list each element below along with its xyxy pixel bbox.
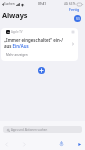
button[interactable]: Apps und Aktionen suchen [3,126,82,133]
button[interactable]: Apple TV [1,28,78,61]
button[interactable]: Senden [76,141,82,147]
button[interactable]: Schließen [71,30,75,34]
staticText: Apps und Aktionen suchen [11,128,48,132]
staticText: Suchen [4,2,15,6]
staticText: Apple TV [11,30,23,34]
button[interactable]: Profil [74,15,81,22]
button[interactable]: Vorwärts [21,141,27,147]
staticText: „Immer eingeschaltet“ ein-/ aus Ein/Aus [4,37,63,49]
staticText: 4G [64,2,68,6]
button[interactable]: Hinzufügen [38,67,45,74]
staticText: 09:41 [38,2,47,6]
staticText: MS [76,17,80,21]
button[interactable]: Teilen [58,140,64,146]
staticText: 63 % [69,2,76,6]
staticText: Always [2,10,28,20]
button[interactable]: Mehr anzeigen [6,53,28,57]
button[interactable]: Zurück [3,141,9,147]
button[interactable]: Fertig [69,7,80,12]
